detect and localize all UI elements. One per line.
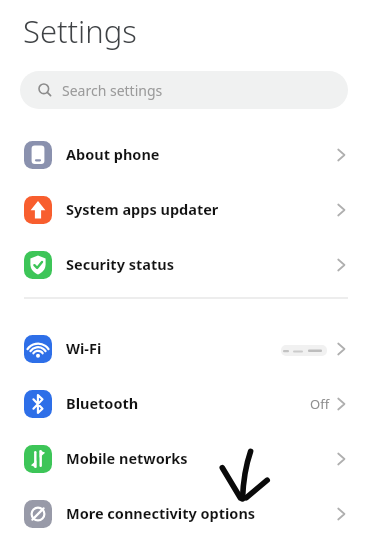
staticText: Off [310, 395, 330, 413]
button[interactable]: Mobile networks [0, 431, 368, 486]
button[interactable]: Security status [0, 237, 368, 292]
staticText: Mobile networks [66, 448, 188, 468]
staticText: Search settings [62, 81, 163, 100]
staticText: Security status [66, 254, 174, 274]
button[interactable]: Bluetooth [0, 376, 368, 431]
staticText: Settings [23, 10, 137, 52]
button[interactable]: More connectivity options [0, 486, 368, 541]
button[interactable]: Search settings [20, 71, 348, 109]
staticText: Wi-Fi [66, 338, 102, 358]
button[interactable]: About phone [0, 127, 368, 182]
button[interactable]: Wi-Fi [0, 321, 368, 376]
staticText: About phone [66, 144, 160, 164]
button[interactable]: System apps updater [0, 182, 368, 237]
staticText: Bluetooth [66, 393, 139, 413]
staticText: System apps updater [66, 199, 219, 219]
staticText: More connectivity options [66, 503, 256, 523]
